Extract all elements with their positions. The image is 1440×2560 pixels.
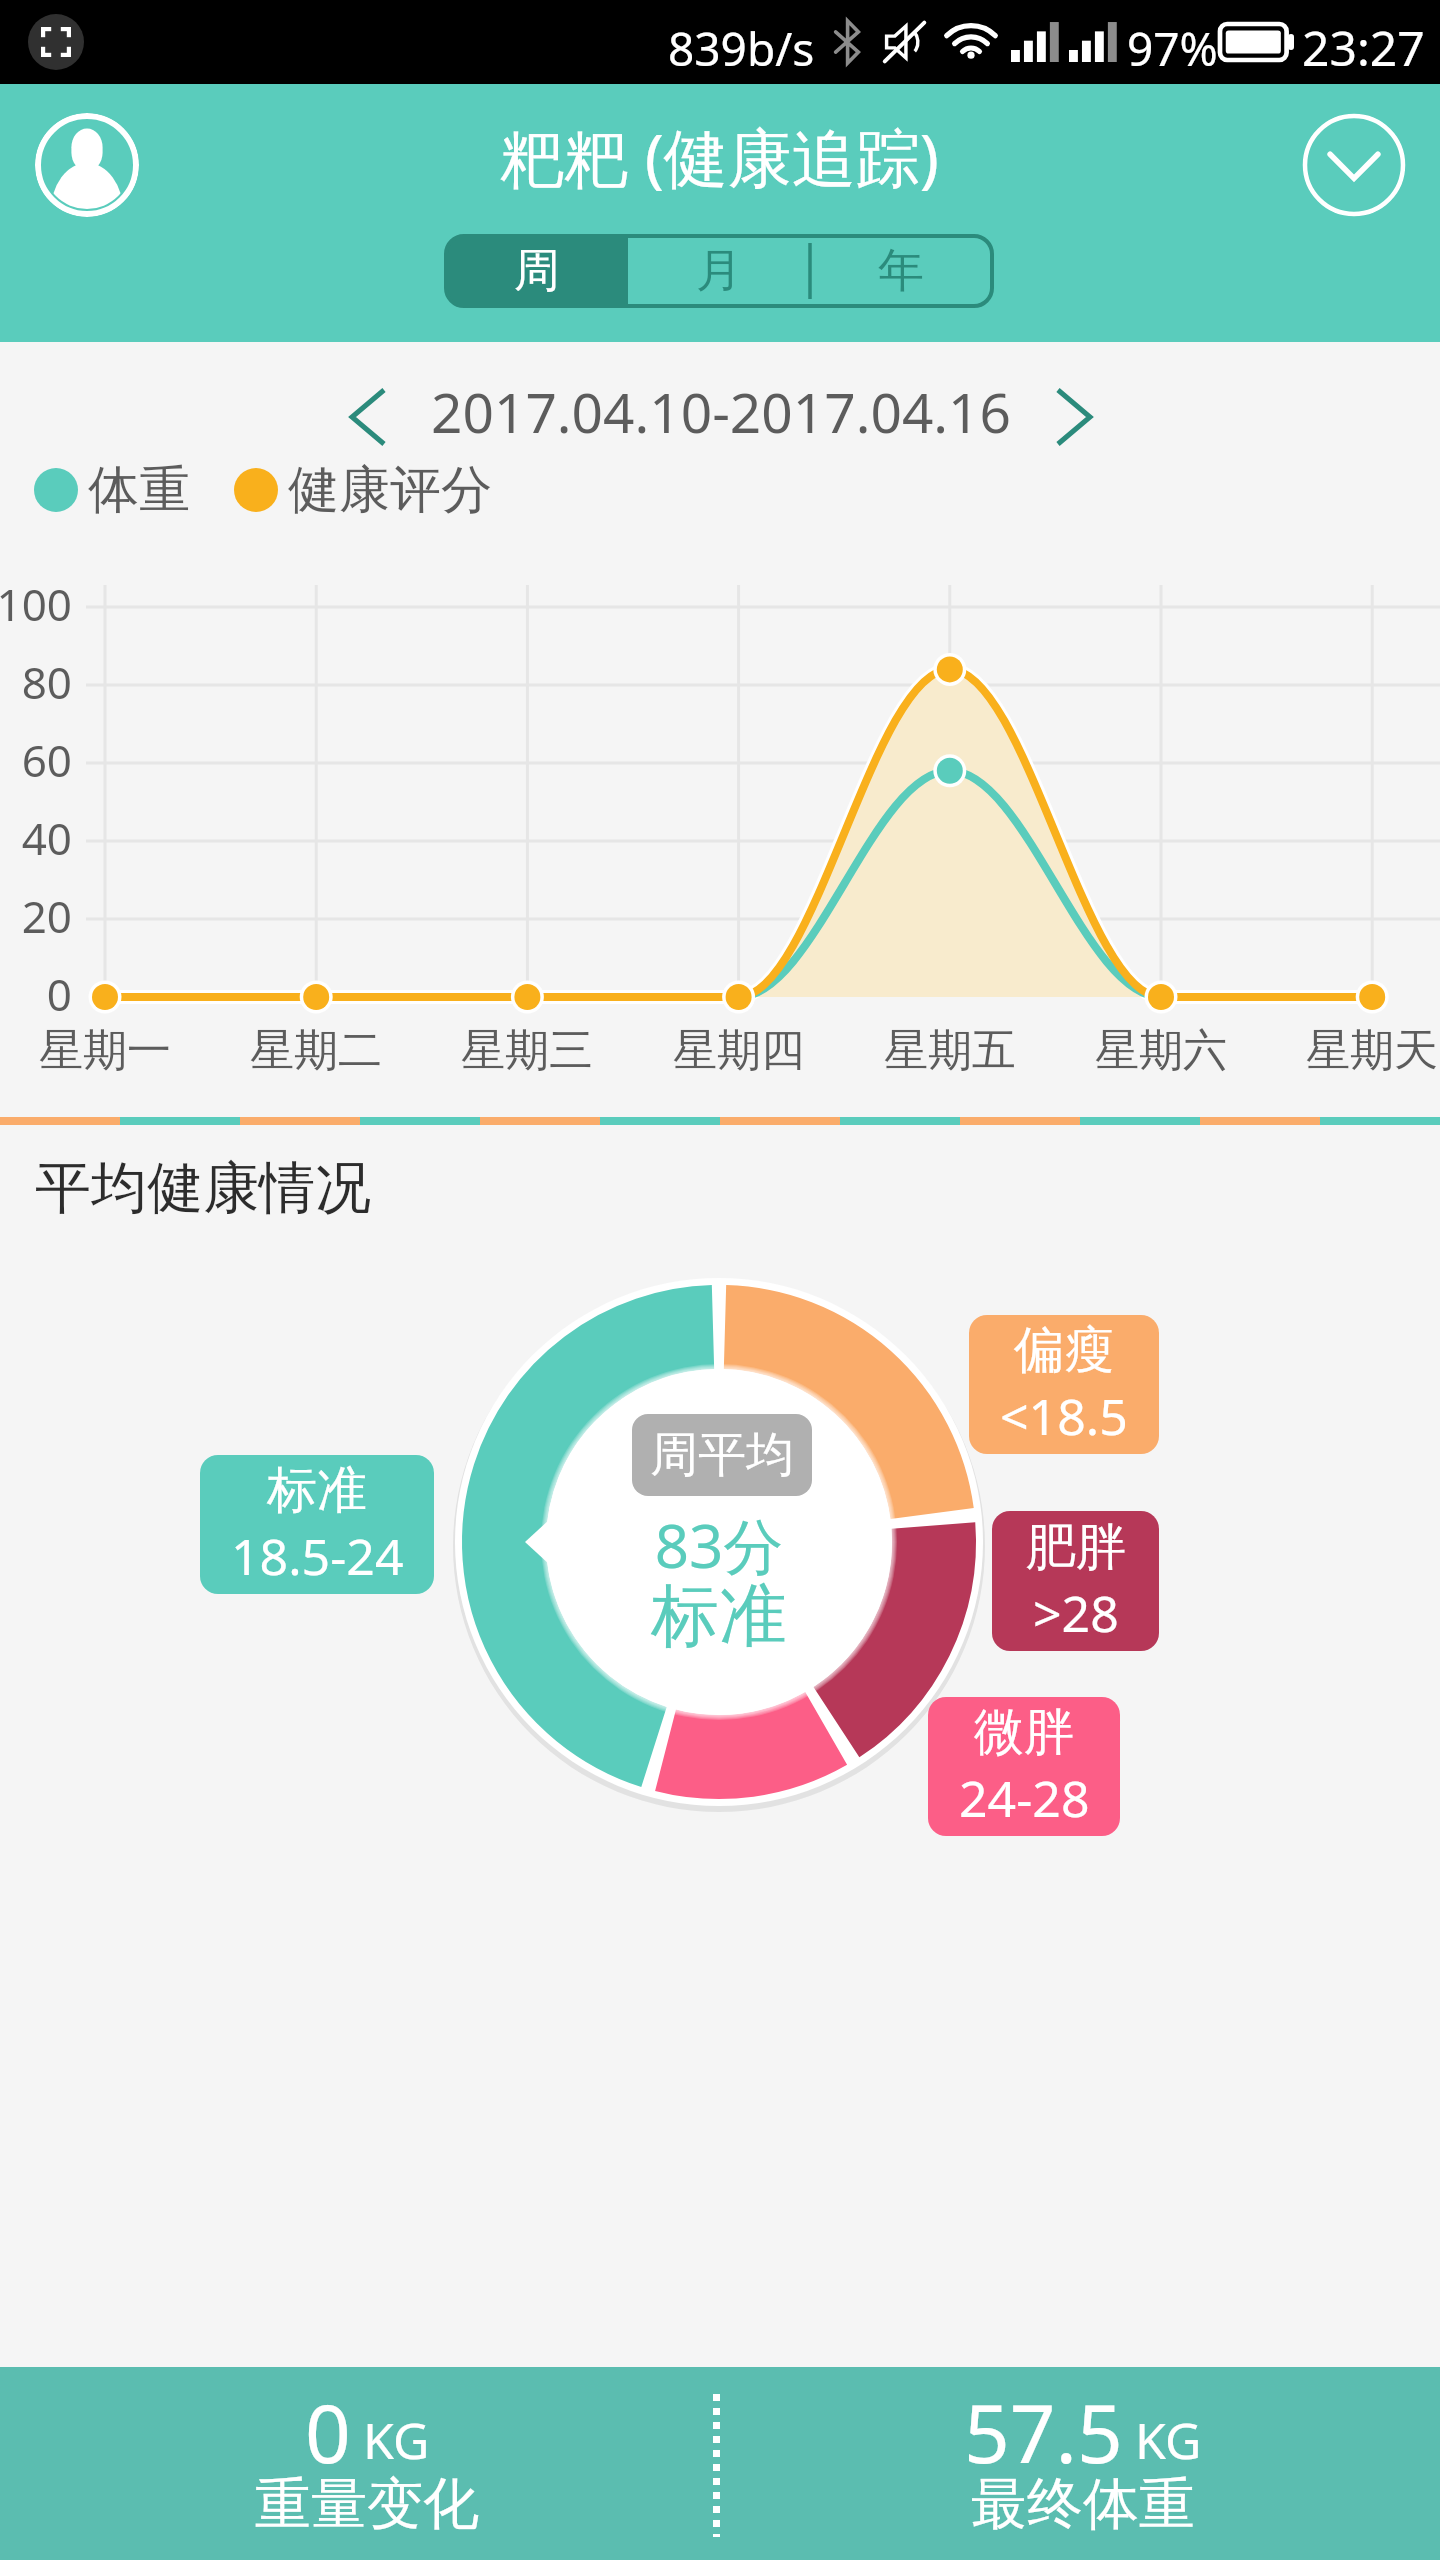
staticText: 24-28 bbox=[959, 1764, 1090, 1832]
staticText: 60 bbox=[0, 730, 72, 790]
staticText: 0 bbox=[305, 2377, 351, 2486]
staticText: 粑粑 (健康追踪) bbox=[500, 113, 940, 200]
staticText: 体重 bbox=[88, 458, 190, 522]
staticText: 星期一 bbox=[0, 1023, 215, 1078]
button[interactable]: 肥胖 bbox=[992, 1511, 1159, 1651]
staticText: 20 bbox=[0, 886, 72, 946]
staticText: 星期五 bbox=[840, 1023, 1060, 1078]
button[interactable]: 偏瘦 bbox=[969, 1315, 1159, 1454]
staticText: 月 bbox=[696, 242, 742, 300]
staticText: 83分 bbox=[569, 1504, 869, 1586]
staticText: 周平均 bbox=[650, 1425, 794, 1485]
staticText: 100 bbox=[0, 574, 72, 634]
button[interactable]: Profile bbox=[35, 113, 139, 217]
button[interactable]: Expand bbox=[1302, 113, 1406, 217]
staticText: 星期六 bbox=[1051, 1023, 1271, 1078]
staticText: 97% bbox=[1127, 17, 1218, 80]
staticText: 平均健康情况 bbox=[35, 1153, 371, 1224]
staticText: 57.5 bbox=[964, 2377, 1123, 2486]
staticText: 星期天 bbox=[1262, 1023, 1440, 1078]
staticText: 0 bbox=[0, 964, 72, 1024]
staticText: 肥胖 bbox=[1026, 1516, 1126, 1579]
staticText: 2017.04.10-2017.04.16 bbox=[431, 374, 1012, 449]
staticText: 星期三 bbox=[417, 1023, 637, 1078]
staticText: 健康评分 bbox=[288, 458, 492, 522]
staticText: 标准 bbox=[267, 1459, 367, 1522]
button[interactable]: 周 bbox=[446, 236, 628, 306]
button[interactable]: 月 bbox=[628, 236, 810, 306]
button[interactable]: 57.5 bbox=[723, 2367, 1440, 2560]
staticText: 星期四 bbox=[629, 1023, 849, 1078]
staticText: 重量变化 bbox=[255, 2469, 479, 2540]
staticText: <18.5 bbox=[1000, 1382, 1128, 1450]
staticText: 偏瘦 bbox=[1014, 1319, 1114, 1382]
button[interactable]: 微胖 bbox=[928, 1697, 1120, 1836]
staticText: 周 bbox=[514, 242, 560, 300]
staticText: 星期二 bbox=[206, 1023, 426, 1078]
staticText: 最终体重 bbox=[971, 2469, 1195, 2540]
staticText: 40 bbox=[0, 808, 72, 868]
staticText: 年 bbox=[878, 242, 924, 300]
staticText: KG bbox=[363, 2406, 430, 2474]
button[interactable]: Next week bbox=[1032, 371, 1112, 451]
staticText: 23:27 bbox=[1302, 15, 1425, 80]
staticText: 微胖 bbox=[974, 1701, 1074, 1764]
staticText: 18.5-24 bbox=[231, 1522, 404, 1590]
staticText: 80 bbox=[0, 652, 72, 712]
staticText: >28 bbox=[1033, 1579, 1119, 1647]
staticText: 标准 bbox=[569, 1574, 869, 1660]
button[interactable]: 0 bbox=[7, 2367, 727, 2560]
button[interactable]: 标准 bbox=[200, 1455, 434, 1594]
button[interactable]: 年 bbox=[810, 236, 992, 306]
button[interactable]: Previous week bbox=[330, 371, 410, 451]
staticText: KG bbox=[1135, 2406, 1202, 2474]
staticText: 839b/s bbox=[668, 17, 815, 80]
